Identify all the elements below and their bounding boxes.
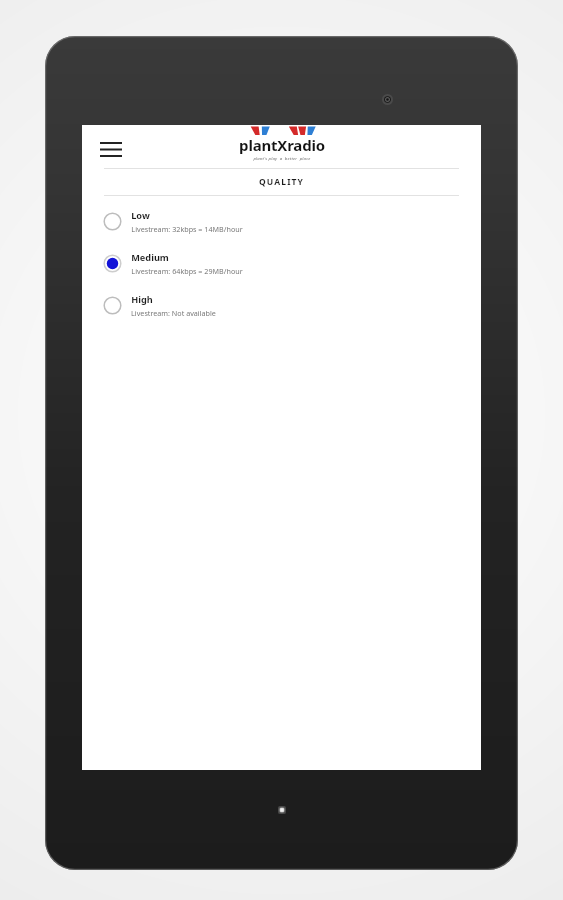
- button[interactable]: High: [82, 284, 481, 326]
- staticText: plant's play a better place: [253, 156, 311, 162]
- button[interactable]: Menu: [96, 136, 126, 162]
- staticText: QUALITY: [259, 176, 304, 188]
- staticText: Livestream: Not available: [131, 308, 216, 318]
- staticText: Livestream: 64kbps = 29MB/hour: [131, 266, 243, 276]
- staticText: Medium: [131, 251, 169, 264]
- staticText: Low: [131, 209, 150, 222]
- staticText: High: [131, 293, 153, 306]
- button[interactable]: plantXradio home: [234, 126, 330, 162]
- button[interactable]: Home: [278, 806, 286, 814]
- staticText: plantXradio: [239, 135, 325, 155]
- staticText: Livestream: 32kbps = 14MB/hour: [131, 224, 243, 234]
- button[interactable]: Low: [82, 200, 481, 242]
- button[interactable]: Medium: [82, 242, 481, 284]
